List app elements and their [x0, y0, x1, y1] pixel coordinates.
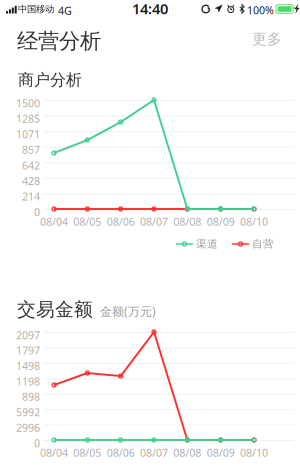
staticText: 214	[22, 189, 40, 203]
staticText: 08/09	[207, 214, 235, 229]
staticText: 100%	[247, 3, 274, 17]
staticText: 5992	[16, 405, 40, 419]
staticText: 08/10	[240, 214, 268, 229]
staticText: 4G	[58, 3, 72, 18]
staticText: 1285	[16, 111, 40, 126]
staticText: 金额(万元)	[100, 303, 156, 319]
staticText: 经营分析	[17, 28, 101, 54]
staticText: 08/07	[140, 214, 168, 229]
staticText: 428	[22, 174, 40, 188]
staticText: 1198	[16, 374, 40, 388]
staticText: 857	[22, 143, 40, 157]
staticText: 08/05	[73, 445, 101, 460]
staticText: 08/04	[40, 214, 68, 229]
staticText: 自营	[252, 237, 274, 250]
button[interactable]: 更多	[248, 28, 286, 50]
staticText: 2996	[16, 420, 40, 435]
staticText: 2097	[16, 328, 40, 342]
staticText: 08/06	[107, 445, 135, 460]
staticText: 08/05	[73, 214, 101, 229]
staticText: 1498	[16, 359, 40, 373]
staticText: 1071	[16, 127, 40, 141]
staticText: 交易金额	[17, 298, 93, 321]
staticText: 08/10	[240, 445, 268, 460]
staticText: 08/07	[140, 445, 168, 460]
staticText: 898	[22, 390, 40, 404]
staticText: 08/06	[107, 214, 135, 229]
staticText: 商户分析	[18, 70, 82, 90]
staticText: 08/08	[173, 445, 201, 460]
staticText: 08/08	[173, 214, 201, 229]
staticText: 08/09	[207, 445, 235, 460]
staticText: 1500	[16, 96, 40, 110]
staticText: 0	[34, 205, 40, 219]
staticText: 08/04	[40, 445, 68, 460]
staticText: 中国移动	[18, 3, 54, 15]
staticText: 渠道	[196, 237, 218, 250]
staticText: 更多	[252, 30, 282, 48]
staticText: 1797	[16, 343, 40, 357]
staticText: 642	[22, 158, 40, 172]
staticText: 0	[34, 436, 40, 450]
staticText: 14:40	[132, 0, 168, 18]
